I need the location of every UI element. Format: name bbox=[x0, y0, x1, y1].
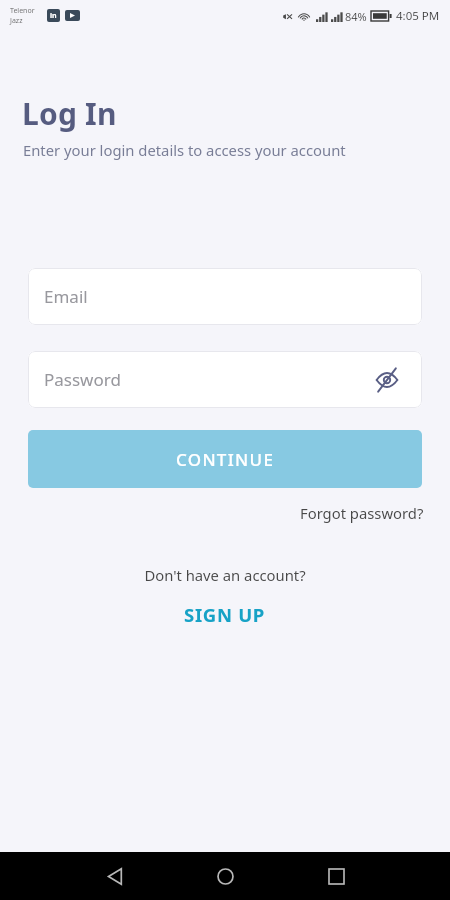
staticText: CONTINUE bbox=[176, 448, 275, 471]
button[interactable]: Email bbox=[28, 268, 422, 325]
staticText: Forgot password? bbox=[300, 503, 424, 523]
button[interactable]: CONTINUE bbox=[28, 430, 422, 488]
button[interactable]: Password bbox=[28, 351, 422, 408]
staticText: Telenor bbox=[10, 6, 35, 16]
button[interactable]: SIGN UP bbox=[164, 598, 286, 631]
staticText: Jazz bbox=[10, 16, 23, 26]
staticText: in bbox=[50, 11, 57, 21]
button[interactable]: Recent apps bbox=[315, 855, 357, 897]
button[interactable]: Home bbox=[204, 855, 246, 897]
staticText: 4:05 PM bbox=[396, 8, 440, 24]
staticText: Password bbox=[44, 368, 121, 391]
button[interactable]: Back bbox=[93, 855, 135, 897]
staticText: 84% bbox=[345, 9, 367, 24]
staticText: Don't have an account? bbox=[0, 565, 450, 585]
staticText: Log In bbox=[22, 93, 117, 134]
staticText: Enter your login details to access your … bbox=[23, 140, 346, 160]
staticText: Email bbox=[44, 285, 88, 308]
button[interactable]: Show password bbox=[372, 365, 402, 395]
staticText: SIGN UP bbox=[184, 602, 266, 627]
button[interactable]: Forgot password? bbox=[280, 499, 450, 527]
